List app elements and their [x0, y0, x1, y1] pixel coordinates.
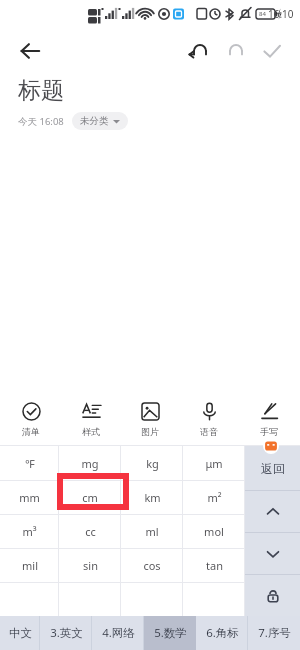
button[interactable]: 清单	[3, 400, 59, 439]
staticText: mm	[19, 490, 40, 505]
staticText: m³	[22, 524, 37, 539]
button[interactable]: 6.角标	[196, 616, 248, 650]
button[interactable]: Next page	[245, 533, 300, 574]
staticText: 16:10	[268, 7, 294, 21]
button[interactable]: m³	[0, 515, 59, 548]
button[interactable]: 3.英文	[40, 616, 92, 650]
button[interactable]: cc	[59, 515, 121, 548]
button[interactable]: kg	[121, 446, 183, 480]
button[interactable]: μm	[183, 446, 245, 480]
staticText: 清单	[22, 426, 40, 437]
button[interactable]: Redo	[218, 33, 254, 69]
staticText: 今天 16:08	[18, 115, 64, 128]
button[interactable]: 4.网络	[92, 616, 144, 650]
staticText: mol	[204, 524, 224, 539]
staticText: kg	[146, 456, 159, 471]
button[interactable]: m²	[183, 481, 245, 514]
staticText: m²	[207, 490, 222, 505]
button[interactable]: km	[121, 481, 183, 514]
staticText: sin	[83, 558, 98, 573]
staticText: 未分类	[80, 115, 109, 127]
button[interactable]: cos	[121, 549, 183, 582]
button[interactable]: sin	[59, 549, 121, 582]
button[interactable]: 5.数学	[144, 616, 196, 650]
staticText: ml	[145, 524, 159, 539]
button[interactable]: 图片	[122, 400, 178, 439]
staticText: 3.英文	[50, 625, 83, 641]
staticText: 中文	[9, 626, 32, 640]
staticText: 7.序号	[258, 625, 291, 641]
staticText: 4.网络	[102, 625, 135, 641]
staticText: 6.角标	[206, 625, 239, 641]
staticText: mil	[22, 558, 38, 573]
staticText: cc	[85, 524, 96, 539]
button[interactable]: 语音	[181, 400, 237, 439]
staticText: ℉	[25, 456, 35, 471]
staticText: cm	[82, 490, 98, 505]
staticText: cos	[143, 558, 161, 573]
staticText: mg	[81, 456, 99, 471]
button[interactable]: Done	[254, 33, 290, 69]
staticText: 返回	[261, 461, 285, 476]
button[interactable]: ℉	[0, 446, 59, 480]
button[interactable]: 中文	[0, 616, 40, 650]
button[interactable]: cm	[59, 481, 121, 514]
button[interactable]: Lock	[245, 575, 300, 616]
button[interactable]: 7.序号	[248, 616, 300, 650]
staticText: 手写	[260, 426, 278, 437]
button[interactable]: tan	[183, 549, 245, 582]
staticText: 图片	[141, 426, 159, 437]
button[interactable]: Back	[12, 33, 48, 69]
button[interactable]: ml	[121, 515, 183, 548]
button[interactable]: 返回	[245, 446, 300, 490]
button[interactable]: Undo	[182, 33, 218, 69]
staticText: 语音	[200, 426, 218, 437]
button[interactable]: Previous page	[245, 491, 300, 532]
button[interactable]: mil	[0, 549, 59, 582]
staticText: 标题	[18, 76, 64, 105]
button[interactable]: 样式	[63, 400, 119, 439]
staticText: tan	[206, 558, 223, 573]
staticText: km	[144, 490, 161, 505]
staticText: 84	[259, 10, 266, 18]
button[interactable]: mg	[59, 446, 121, 480]
button[interactable]: 未分类	[72, 112, 128, 130]
staticText: 样式	[82, 426, 100, 437]
button[interactable]: mol	[183, 515, 245, 548]
staticText: 5.数学	[154, 625, 187, 641]
button[interactable]: 手写	[241, 400, 297, 439]
button[interactable]: mm	[0, 481, 59, 514]
staticText: μm	[205, 456, 223, 471]
